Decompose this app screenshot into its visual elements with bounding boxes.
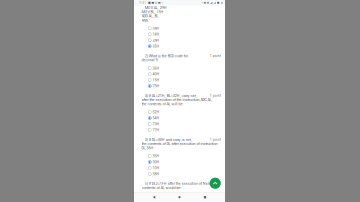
button[interactable]: Home [174,192,185,202]
staticText: 26H [152,66,159,70]
button[interactable]: Scroll to top [209,177,221,189]
staticText: after the execution of the instruction A… [142,98,213,102]
button[interactable]: 3AH [148,25,221,31]
staticText: decimal 9: [142,58,159,62]
staticText: the contents of DL after execution of in… [142,142,218,146]
button[interactable]: 15H [148,77,221,83]
staticText: ADD AL, BL [142,14,159,18]
staticText: MOV BL, 15H [142,10,164,14]
staticText: 3AH [152,26,159,30]
button[interactable]: Recent apps [199,192,210,202]
button[interactable]: 10H [148,165,221,171]
button[interactable]: 52H [148,109,221,115]
staticText: 30H [152,160,159,164]
staticText: 5) If DL2=1FH after the execution of NEG… [145,181,217,186]
button[interactable]: 14H [148,31,221,37]
button[interactable]: 35H [148,43,221,49]
staticText: AAA [142,18,148,22]
button[interactable]: 40H [148,71,221,77]
staticText: 14H [152,32,159,36]
button[interactable]: 54H [148,115,221,121]
staticText: 2AH [152,38,159,42]
button[interactable]: 35H [148,153,221,159]
staticText: 1 point [210,138,221,142]
staticText: 40H [152,72,159,76]
staticText: 52H [152,110,159,114]
staticText: 54H [152,116,159,120]
button[interactable]: 2AH [148,37,221,43]
staticText: contents of AL would be: [142,185,182,190]
button[interactable]: Back [148,192,159,202]
staticText: 10H [152,166,159,170]
staticText: 55 [221,1,223,4]
staticText: MOV AL, 29H [145,6,167,10]
staticText: 1 point [210,54,221,58]
button[interactable]: 58H [148,171,221,177]
staticText: 3) If DL=30H and carry is set, [145,137,192,142]
staticText: DL,35H: [142,146,155,150]
staticText: 15H [152,78,159,82]
button[interactable]: 73H [148,121,221,127]
staticText: the contents of AL will be: [142,102,184,106]
staticText: 75H [152,84,159,88]
staticText: 73H [152,122,159,126]
staticText: 2) What is the BCD code for [145,54,188,58]
staticText: 35H [152,44,159,48]
staticText: 35H [152,154,159,158]
button[interactable]: 77H [148,127,221,133]
button[interactable]: 30H [148,159,221,165]
button[interactable]: 26H [148,65,221,71]
staticText: 4) If AL=21H, BL=32H, carry set, [145,93,197,98]
staticText: 77H [152,128,159,132]
button[interactable]: 75H [148,83,221,89]
staticText: 1 point [210,94,221,98]
staticText: 58H [152,172,159,176]
staticText: 9:41 [139,1,146,4]
